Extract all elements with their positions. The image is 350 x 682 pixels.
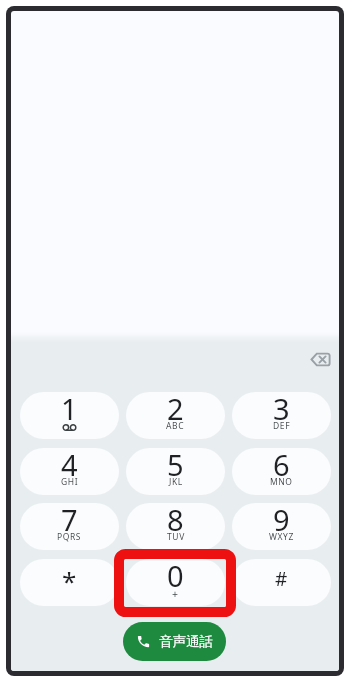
button[interactable]: 音声通話 xyxy=(123,622,226,661)
button[interactable]: 8 xyxy=(126,503,225,550)
staticText: 3 xyxy=(273,392,290,428)
staticText: 8 xyxy=(167,503,184,539)
button[interactable]: 0 xyxy=(126,559,225,606)
staticText: PQRS xyxy=(57,531,82,543)
button[interactable]: * xyxy=(20,559,119,606)
staticText: TUV xyxy=(167,531,185,543)
staticText: 0 xyxy=(167,559,184,595)
button[interactable]: 3 xyxy=(232,392,331,439)
staticText: # xyxy=(275,566,288,592)
staticText: DEF xyxy=(273,420,291,432)
staticText: GHI xyxy=(61,476,79,488)
staticText: 4 xyxy=(61,448,78,484)
staticText: JKL xyxy=(169,476,183,488)
staticText: + xyxy=(172,587,179,601)
button[interactable]: # xyxy=(232,559,331,606)
staticText: MNO xyxy=(270,476,293,488)
button[interactable]: 1 xyxy=(20,392,119,439)
staticText: * xyxy=(62,563,77,598)
staticText: 5 xyxy=(167,448,184,484)
staticText: 6 xyxy=(273,448,290,484)
staticText: 1 xyxy=(61,392,78,428)
button[interactable]: 2 xyxy=(126,392,225,439)
staticText: ABC xyxy=(166,420,185,432)
staticText: 音声通話 xyxy=(159,633,213,650)
button[interactable]: 5 xyxy=(126,448,225,495)
button[interactable] xyxy=(311,349,335,373)
button[interactable]: 7 xyxy=(20,503,119,550)
staticText: WXYZ xyxy=(269,531,294,543)
staticText: 2 xyxy=(167,392,184,428)
button[interactable]: 6 xyxy=(232,448,331,495)
staticText: 9 xyxy=(273,503,290,539)
button[interactable]: 9 xyxy=(232,503,331,550)
button[interactable]: 4 xyxy=(20,448,119,495)
staticText: 7 xyxy=(61,503,78,539)
